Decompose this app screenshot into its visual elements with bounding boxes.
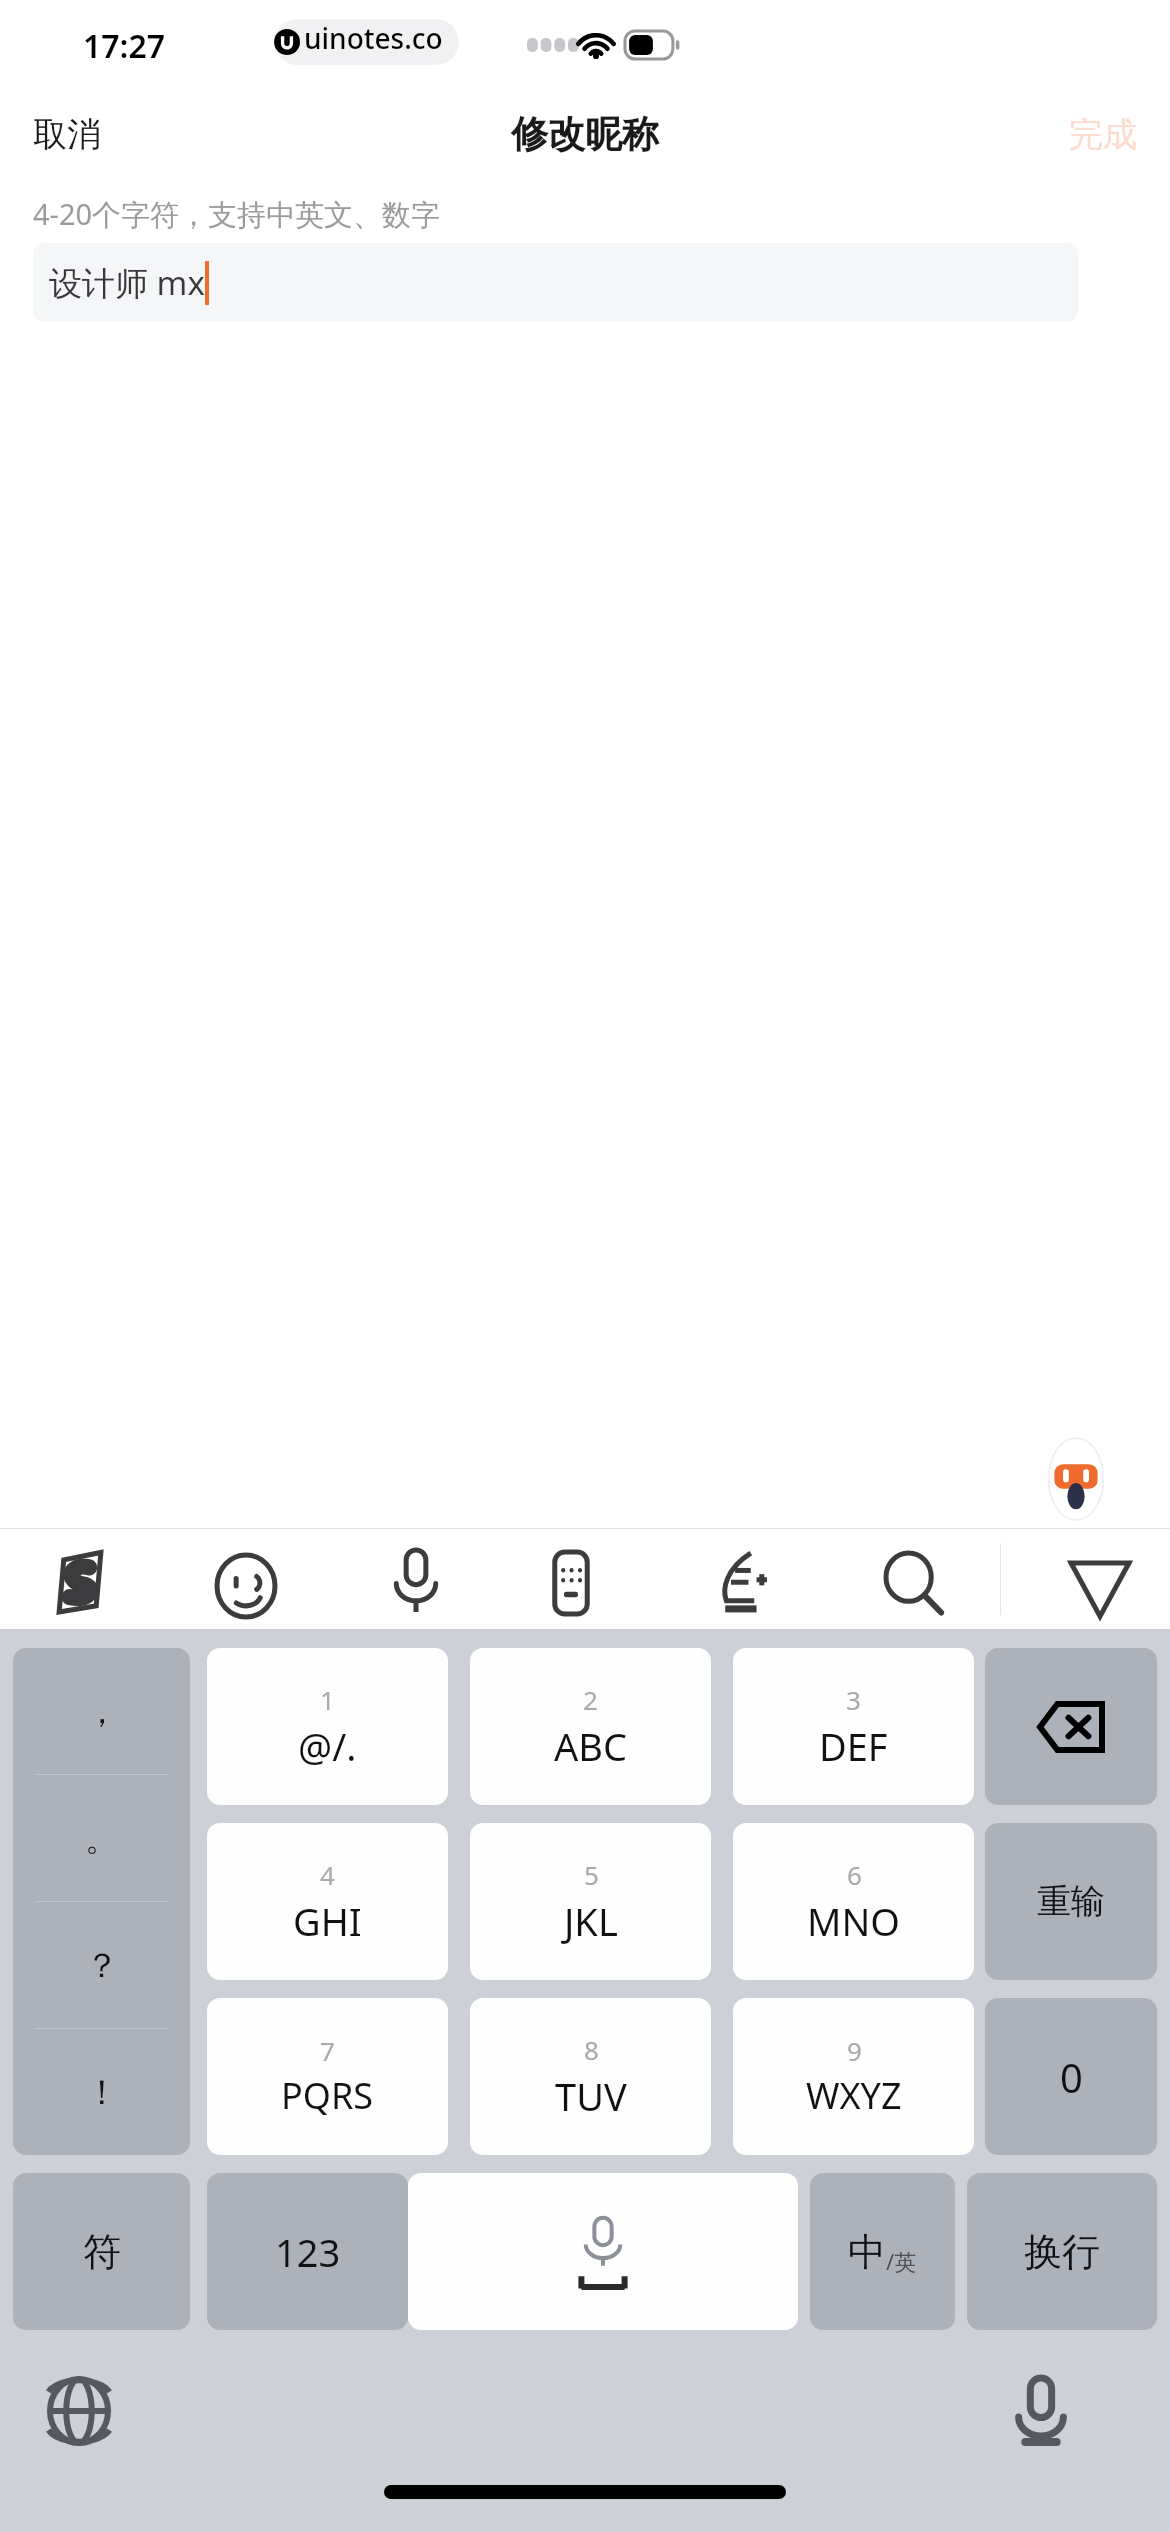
staticText: ？: [85, 1944, 119, 1987]
button[interactable]: Emoji: [208, 1548, 284, 1624]
button[interactable]: 取消: [0, 95, 129, 174]
button[interactable]: Switch Chinese English: [810, 2173, 955, 2330]
button[interactable]: Backspace: [985, 1648, 1157, 1805]
staticText: 5: [584, 1857, 599, 1892]
staticText: 完成: [1069, 113, 1137, 156]
button[interactable]: 重输: [985, 1823, 1157, 1980]
button[interactable]: Switch keyboard: [40, 2372, 118, 2450]
button[interactable]: ！: [13, 2029, 190, 2155]
staticText: MNO: [807, 1895, 901, 1947]
button[interactable]: Sogou assistant: [1040, 1438, 1112, 1520]
staticText: 修改昵称: [511, 111, 659, 158]
staticText: 9: [847, 2033, 862, 2068]
staticText: 7: [320, 2033, 335, 2068]
staticText: 换行: [1024, 2228, 1100, 2276]
button[interactable]: 设计师 mx: [33, 243, 1078, 322]
button[interactable]: Voice dictation: [1002, 2372, 1080, 2450]
button[interactable]: Keyboard layout: [533, 1545, 609, 1621]
staticText: GHI: [293, 1895, 362, 1947]
staticText: 取消: [33, 113, 101, 156]
button[interactable]: 2 ABC: [470, 1648, 711, 1805]
button[interactable]: ，: [13, 1648, 190, 1774]
button[interactable]: 4 GHI: [207, 1823, 448, 1980]
button[interactable]: Sogou keyboard: [42, 1543, 118, 1619]
staticText: ！: [85, 2071, 119, 2114]
staticText: uinotes.com: [304, 19, 459, 65]
staticText: 。: [85, 1817, 119, 1860]
staticText: 设计师 mx: [49, 260, 205, 305]
button[interactable]: 123: [207, 2173, 408, 2330]
staticText: 17:27: [83, 24, 166, 68]
staticText: 6: [847, 1857, 862, 1892]
staticText: 0: [1060, 2050, 1083, 2104]
staticText: 123: [275, 2226, 341, 2278]
staticText: 4: [320, 1857, 335, 1892]
button[interactable]: 6 MNO: [733, 1823, 974, 1980]
staticText: 2: [583, 1682, 598, 1717]
staticText: 3: [846, 1682, 861, 1717]
staticText: @/.: [298, 1720, 357, 1772]
staticText: TUV: [555, 2070, 627, 2122]
button[interactable]: Handwriting: [700, 1543, 776, 1619]
staticText: DEF: [819, 1720, 888, 1772]
staticText: WXYZ: [806, 2071, 902, 2120]
staticText: 中: [848, 2228, 886, 2276]
button[interactable]: 7 PQRS: [207, 1998, 448, 2155]
button[interactable]: Search: [877, 1546, 953, 1622]
button[interactable]: 0: [985, 1998, 1157, 2155]
button[interactable]: 8 TUV: [470, 1998, 711, 2155]
staticText: 符: [83, 2228, 121, 2276]
staticText: ABC: [554, 1720, 627, 1772]
button[interactable]: 换行: [967, 2173, 1157, 2330]
button[interactable]: ？: [13, 1902, 190, 2028]
button[interactable]: uinotes.com: [274, 19, 459, 65]
staticText: ，: [85, 1690, 119, 1733]
button[interactable]: 符: [13, 2173, 190, 2330]
button[interactable]: 。: [13, 1775, 190, 1901]
button[interactable]: 5 JKL: [470, 1823, 711, 1980]
button[interactable]: 3 DEF: [733, 1648, 974, 1805]
staticText: 8: [584, 2032, 599, 2067]
staticText: 重输: [1037, 1880, 1105, 1923]
button[interactable]: Voice input: [378, 1543, 454, 1619]
button[interactable]: 完成: [1041, 95, 1170, 174]
staticText: JKL: [564, 1895, 618, 1947]
staticText: 4-20个字符，支持中英文、数字: [33, 194, 441, 234]
button[interactable]: 9 WXYZ: [733, 1998, 974, 2155]
staticText: 1: [320, 1682, 335, 1717]
button[interactable]: Hide keyboard: [1062, 1556, 1138, 1632]
staticText: /英: [886, 2246, 917, 2276]
button[interactable]: 1 @/.: [207, 1648, 448, 1805]
staticText: PQRS: [281, 2071, 374, 2120]
button[interactable]: Space / voice: [408, 2173, 798, 2330]
